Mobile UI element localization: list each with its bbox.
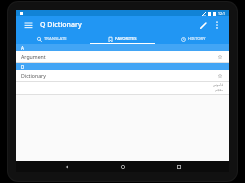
staticText: Argument bbox=[21, 53, 46, 60]
staticText: FAVORITES bbox=[115, 36, 137, 42]
button[interactable]: Recent apps bbox=[173, 161, 184, 172]
button[interactable]: Remove from favorites bbox=[216, 53, 224, 61]
button[interactable]: HISTORY bbox=[158, 33, 229, 44]
button[interactable]: More options bbox=[211, 19, 223, 31]
staticText: معجم bbox=[215, 88, 223, 92]
staticText: TRANSLATE bbox=[44, 36, 67, 42]
staticText: D bbox=[21, 64, 25, 70]
button[interactable]: Argument bbox=[16, 51, 229, 62]
staticText: 12:1 bbox=[218, 11, 225, 16]
button[interactable]: Dictionary bbox=[16, 70, 229, 81]
button[interactable]: Open navigation menu bbox=[22, 19, 34, 31]
staticText: Q Dictionary bbox=[40, 20, 82, 30]
staticText: Dictionary bbox=[21, 72, 46, 79]
staticText: HISTORY bbox=[188, 36, 206, 42]
button[interactable]: Edit bbox=[197, 19, 209, 31]
button[interactable]: Home bbox=[117, 161, 128, 172]
button[interactable]: Remove from favorites bbox=[216, 72, 224, 80]
staticText: قاموس bbox=[212, 83, 223, 87]
staticText: A bbox=[21, 45, 24, 51]
button[interactable]: TRANSLATE bbox=[16, 33, 87, 44]
button[interactable]: Back bbox=[61, 161, 72, 172]
button[interactable]: FAVORITES bbox=[87, 33, 158, 44]
